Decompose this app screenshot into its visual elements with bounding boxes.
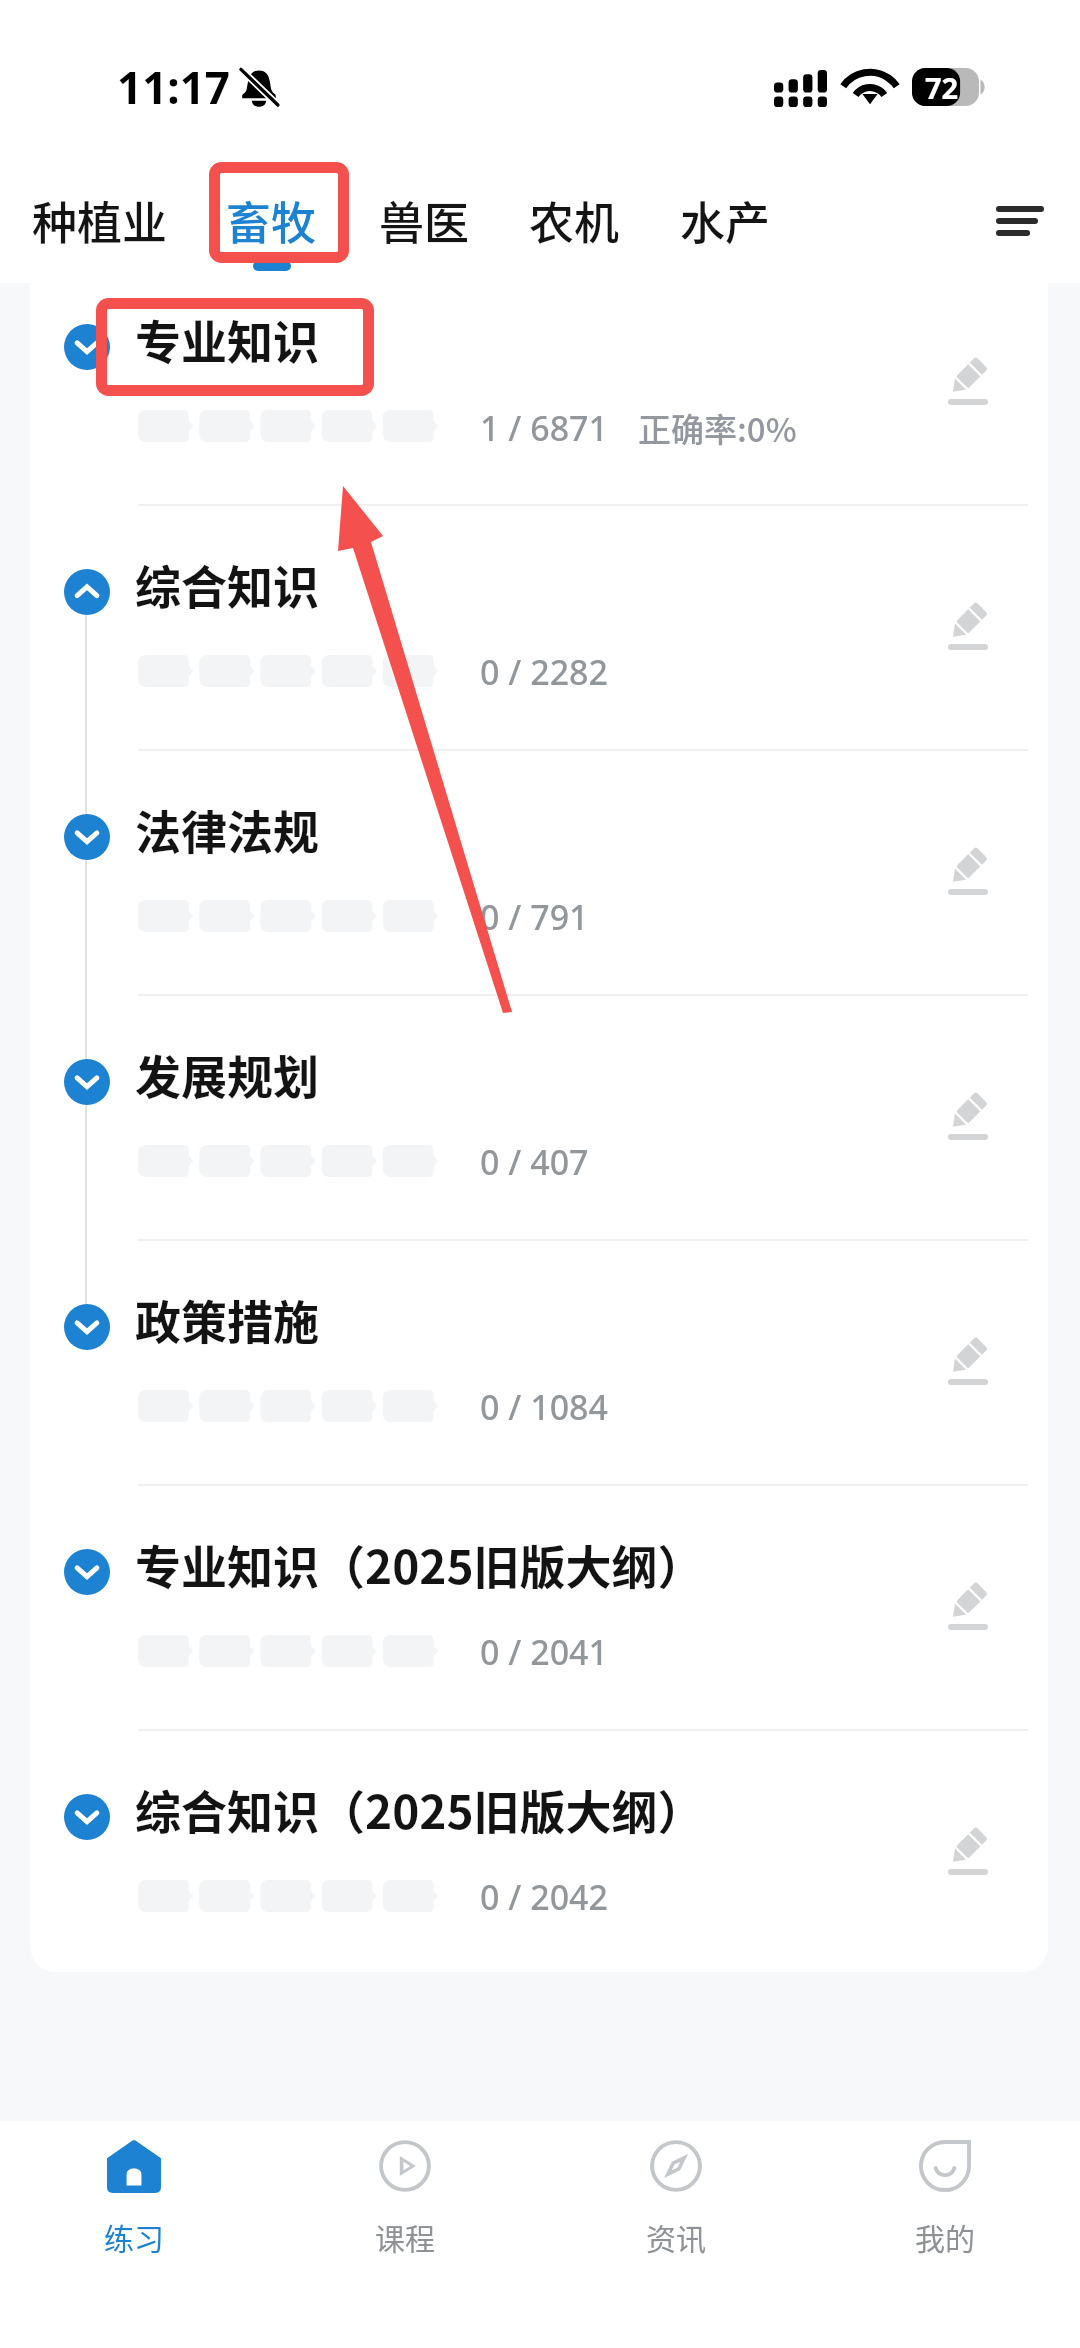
button[interactable]: Edit (928, 1317, 1008, 1405)
staticText: 兽医 (379, 188, 470, 253)
button[interactable]: 农机 (511, 178, 638, 281)
button[interactable]: 专业知识（2025旧版大纲） (30, 1508, 1048, 1753)
staticText: 专业知识 (135, 306, 319, 373)
staticText: 专业知识（2025旧版大纲） (135, 1531, 704, 1598)
staticText: 72 (925, 68, 959, 105)
staticText: 发展规划 (135, 1041, 319, 1108)
staticText: 0 / 2282 (480, 649, 609, 695)
staticText: 畜牧 (226, 188, 317, 253)
staticText: 综合知识（2025旧版大纲） (135, 1776, 704, 1843)
button[interactable]: 练习 (49, 2129, 219, 2268)
button[interactable]: Edit (928, 337, 1008, 425)
button[interactable]: 我的 (860, 2129, 1030, 2268)
staticText: 正确率:0% (638, 404, 797, 452)
button[interactable]: 综合知识 (30, 528, 1048, 773)
button[interactable]: 专业知识 (30, 283, 1048, 528)
button[interactable]: 兽医 (361, 178, 488, 281)
button[interactable]: Edit (928, 582, 1008, 670)
button[interactable]: 发展规划 (30, 1018, 1048, 1263)
staticText: 1 / 6871 (480, 405, 609, 451)
button[interactable]: 畜牧 (208, 178, 335, 281)
button[interactable]: 资讯 (591, 2129, 761, 2268)
button[interactable]: 课程 (320, 2129, 490, 2268)
staticText: 我的 (915, 2215, 975, 2258)
button[interactable]: 政策措施 (30, 1263, 1048, 1508)
button[interactable]: Edit (928, 1562, 1008, 1650)
button[interactable]: 种植业 (14, 178, 186, 281)
staticText: 种植业 (32, 188, 168, 253)
staticText: 课程 (375, 2215, 435, 2258)
staticText: 综合知识 (135, 551, 319, 618)
staticText: 0 / 2041 (480, 1629, 609, 1675)
staticText: 0 / 1084 (480, 1384, 609, 1430)
staticText: 政策措施 (135, 1286, 319, 1353)
staticText: 0 / 2042 (480, 1874, 609, 1920)
staticText: 农机 (529, 188, 620, 253)
button[interactable]: Menu (974, 175, 1066, 267)
button[interactable]: 水产 (662, 178, 789, 281)
button[interactable]: 综合知识（2025旧版大纲） (30, 1753, 1048, 1972)
button[interactable]: Edit (928, 827, 1008, 915)
staticText: 11:17 (117, 57, 231, 117)
staticText: 练习 (104, 2215, 164, 2258)
button[interactable]: Edit (928, 1072, 1008, 1160)
staticText: 法律法规 (135, 796, 319, 863)
staticText: 0 / 791 (480, 894, 589, 940)
staticText: 0 / 407 (480, 1139, 589, 1185)
staticText: 资讯 (646, 2215, 706, 2258)
button[interactable]: Edit (928, 1807, 1008, 1895)
button[interactable]: 法律法规 (30, 773, 1048, 1018)
staticText: 水产 (680, 188, 771, 253)
